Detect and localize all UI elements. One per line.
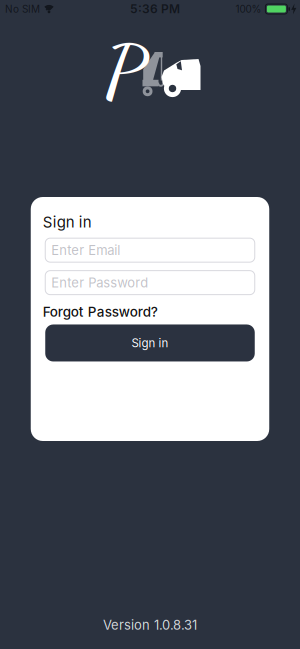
button[interactable]: Forgot Password? [43, 304, 158, 320]
button[interactable]: Enter Password [45, 271, 255, 295]
staticText: Enter Password [51, 275, 148, 290]
staticText: No SIM [5, 3, 40, 15]
staticText: 5:36 PM [130, 2, 180, 16]
button[interactable]: Sign in [45, 324, 255, 361]
staticText: Sign in [43, 213, 92, 231]
staticText: Sign in [131, 336, 168, 350]
staticText: Forgot Password? [43, 304, 158, 320]
staticText: Enter Email [51, 242, 120, 258]
staticText: P [104, 28, 145, 116]
staticText: 100% [235, 3, 261, 15]
staticText: Version 1.0.8.31 [103, 617, 197, 633]
button[interactable]: Enter Email [45, 238, 255, 262]
